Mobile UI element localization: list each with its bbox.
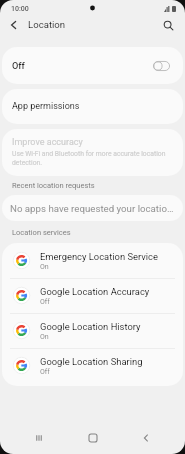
- staticText: Location services: [12, 228, 71, 237]
- button[interactable]: Location off: [153, 61, 170, 71]
- button[interactable]: App permissions: [2, 89, 183, 124]
- staticText: Off: [40, 298, 50, 306]
- staticText: No apps have requested your location..: [10, 203, 175, 214]
- staticText: Use Wi-Fi and Bluetooth for more accurat…: [12, 150, 170, 166]
- button[interactable]: Google Location History: [2, 313, 183, 348]
- button[interactable]: Back: [131, 426, 161, 450]
- staticText: On: [40, 263, 49, 271]
- staticText: Google Location Sharing: [40, 356, 143, 367]
- button[interactable]: Off: [2, 47, 183, 84]
- button[interactable]: Search: [156, 13, 180, 37]
- button[interactable]: Home: [78, 426, 108, 450]
- button[interactable]: Emergency Location Service: [2, 243, 183, 278]
- staticText: Off: [12, 60, 25, 71]
- button[interactable]: Google Location Accuracy: [2, 278, 183, 313]
- staticText: Recent location requests: [12, 181, 95, 190]
- staticText: Google Location History: [40, 321, 141, 332]
- staticText: Improve accuracy: [12, 137, 83, 148]
- button[interactable]: Improve accuracy: [2, 129, 183, 176]
- staticText: On: [40, 333, 49, 341]
- staticText: Location: [28, 19, 66, 30]
- staticText: Off: [40, 368, 50, 376]
- button[interactable]: Google Location Sharing: [2, 348, 183, 383]
- staticText: App permissions: [12, 101, 80, 112]
- button[interactable]: Recent apps: [24, 426, 54, 450]
- staticText: 10:00: [11, 5, 29, 13]
- staticText: Google Location Accuracy: [40, 286, 150, 297]
- button[interactable]: Navigate up: [0, 11, 27, 38]
- staticText: Emergency Location Service: [40, 251, 158, 262]
